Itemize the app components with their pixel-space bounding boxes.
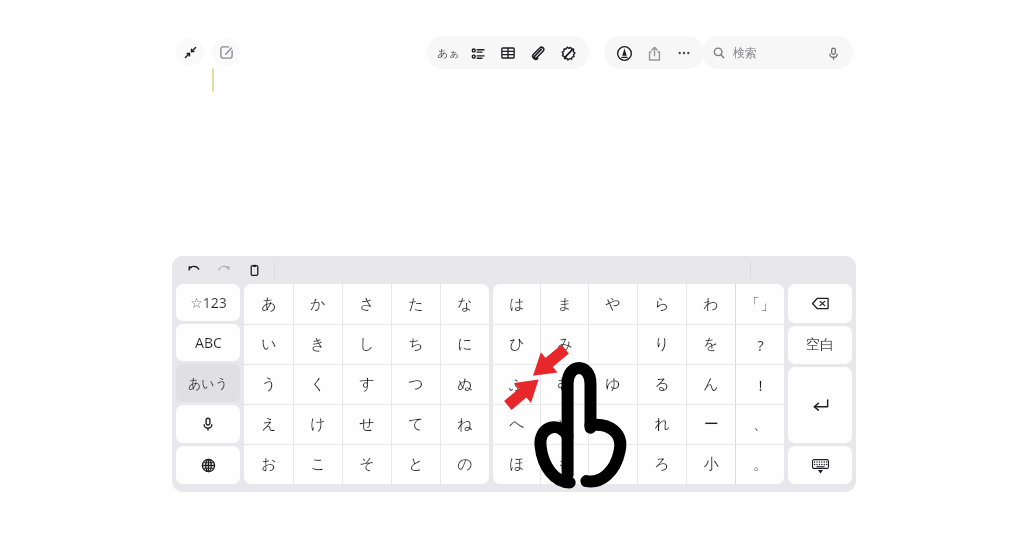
button[interactable]: Dictation — [176, 405, 240, 443]
button[interactable]: き — [294, 325, 342, 364]
button[interactable]: め — [541, 405, 588, 444]
button[interactable]: す — [343, 365, 391, 404]
button[interactable]: ー — [687, 405, 735, 444]
button[interactable]: ぬ — [441, 365, 489, 404]
button[interactable]: り — [638, 325, 686, 364]
button[interactable]: List — [463, 38, 493, 68]
button[interactable]: し — [343, 325, 391, 364]
button[interactable]: Delete — [788, 284, 852, 323]
button[interactable]: れ — [638, 405, 686, 444]
button[interactable]: そ — [343, 445, 391, 484]
staticText: ゆ — [605, 375, 621, 394]
button[interactable]: や — [589, 284, 637, 324]
button[interactable]: ABC — [176, 324, 240, 361]
staticText: え — [261, 415, 277, 434]
button[interactable]: く — [294, 365, 342, 404]
button[interactable]: あいう — [176, 364, 240, 402]
button[interactable]: Dictation — [823, 43, 843, 63]
button[interactable]: Share — [639, 38, 669, 68]
staticText: 検索 — [733, 45, 757, 60]
staticText: さ — [359, 295, 375, 314]
button[interactable]: て — [392, 405, 440, 444]
staticText: に — [457, 335, 473, 354]
staticText: お — [261, 455, 277, 474]
button[interactable]: へ — [493, 405, 540, 444]
button[interactable]: ら — [638, 284, 686, 324]
button[interactable]: ま — [541, 284, 588, 324]
button[interactable]: Markup — [553, 38, 583, 68]
button[interactable]: Paste — [242, 258, 266, 282]
button[interactable]: ち — [392, 325, 440, 364]
button[interactable]: 、 — [736, 405, 784, 444]
button[interactable]: に — [441, 325, 489, 364]
staticText: あぁ — [437, 46, 460, 60]
button[interactable]: こ — [294, 445, 342, 484]
button[interactable]: Table — [493, 38, 523, 68]
staticText: れ — [654, 415, 670, 434]
button[interactable]: ほ — [493, 445, 540, 484]
button[interactable]: ん — [687, 365, 735, 404]
button[interactable]: 空白 — [788, 326, 852, 364]
button[interactable]: ! — [736, 365, 784, 404]
button[interactable]: を — [687, 325, 735, 364]
button[interactable]: む — [541, 365, 588, 404]
staticText: や — [605, 295, 621, 314]
button[interactable]: More — [669, 38, 699, 68]
staticText: ら — [654, 295, 670, 314]
staticText: て — [408, 415, 424, 434]
staticText: の — [457, 455, 473, 474]
button[interactable]: ね — [441, 405, 489, 444]
button[interactable]: の — [441, 445, 489, 484]
button[interactable]: Undo — [182, 258, 206, 282]
staticText: ☆123 — [190, 293, 227, 312]
button[interactable]: み — [541, 325, 588, 364]
button[interactable]: 小 — [687, 445, 735, 484]
button[interactable]: Return — [788, 367, 852, 443]
staticText: し — [359, 335, 375, 354]
button[interactable]: ゆ — [589, 365, 637, 404]
button[interactable]: Text format — [433, 38, 463, 68]
button[interactable]: と — [392, 445, 440, 484]
staticText: こ — [310, 455, 326, 474]
button[interactable]: Attach — [523, 38, 553, 68]
button[interactable]: ろ — [638, 445, 686, 484]
button[interactable]: New note — [212, 38, 240, 66]
button[interactable]: え — [244, 405, 293, 444]
button[interactable]: つ — [392, 365, 440, 404]
button[interactable]: さ — [343, 284, 391, 324]
button[interactable]: 検索 — [702, 36, 853, 69]
staticText: ね — [457, 415, 473, 434]
staticText: 小 — [704, 455, 719, 474]
button[interactable]: か — [294, 284, 342, 324]
staticText: あ — [261, 295, 277, 314]
button[interactable]: は — [493, 284, 540, 324]
button[interactable]: 「」 — [736, 284, 784, 324]
button[interactable]: ふ — [493, 365, 540, 404]
staticText: ろ — [654, 455, 670, 474]
button[interactable]: よ — [589, 445, 637, 484]
button[interactable]: ☆123 — [176, 284, 240, 321]
button[interactable]: ひ — [493, 325, 540, 364]
button[interactable]: Collapse — [176, 38, 204, 66]
button[interactable]: 。 — [736, 445, 784, 484]
staticText: せ — [359, 415, 375, 434]
button[interactable]: け — [294, 405, 342, 444]
button[interactable] — [589, 405, 637, 444]
button[interactable]: あ — [244, 284, 293, 324]
button[interactable]: な — [441, 284, 489, 324]
staticText: わ — [703, 295, 719, 314]
button[interactable]: た — [392, 284, 440, 324]
button[interactable]: る — [638, 365, 686, 404]
button[interactable]: Hide keyboard — [788, 446, 852, 484]
button[interactable]: Switch keyboard — [176, 446, 240, 484]
button[interactable]: う — [244, 365, 293, 404]
button[interactable]: わ — [687, 284, 735, 324]
button[interactable]: せ — [343, 405, 391, 444]
button[interactable]: Redo — [212, 258, 236, 282]
button[interactable]: い — [244, 325, 293, 364]
button[interactable]: ? — [736, 325, 784, 364]
button[interactable]: お — [244, 445, 293, 484]
button[interactable]: も — [541, 445, 588, 484]
button[interactable]: Markup tool — [609, 38, 639, 68]
